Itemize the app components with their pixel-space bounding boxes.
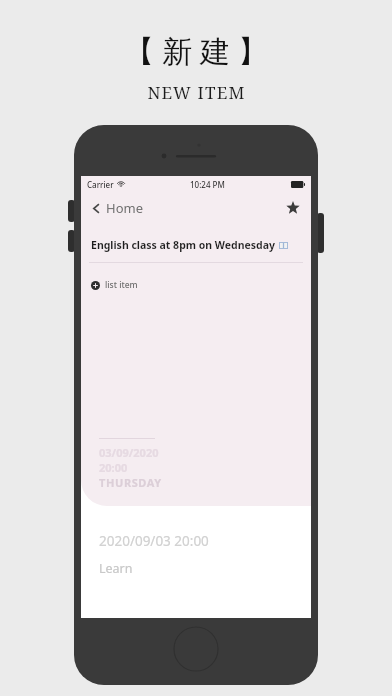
staticText: 【 新 建 】 [124, 30, 268, 71]
staticText: 20:00 [99, 460, 128, 475]
button[interactable]: Home [89, 196, 145, 220]
staticText: list item [105, 279, 138, 291]
button[interactable]: English class at 8pm on Wednesday [81, 238, 311, 262]
staticText: English class at 8pm on Wednesday [91, 238, 275, 252]
staticText: 03/09/2020 [99, 445, 159, 460]
staticText: Carrier [87, 179, 114, 190]
button[interactable]: Favorite [283, 198, 303, 218]
staticText: THURSDAY [99, 475, 162, 490]
staticText: NEW ITEM [147, 81, 246, 104]
staticText: Learn [99, 560, 133, 577]
button[interactable]: list item [81, 263, 311, 301]
staticText: Home [106, 199, 143, 217]
staticText: 10:24 PM [190, 179, 225, 190]
staticText: 2020/09/03 20:00 [99, 532, 209, 550]
